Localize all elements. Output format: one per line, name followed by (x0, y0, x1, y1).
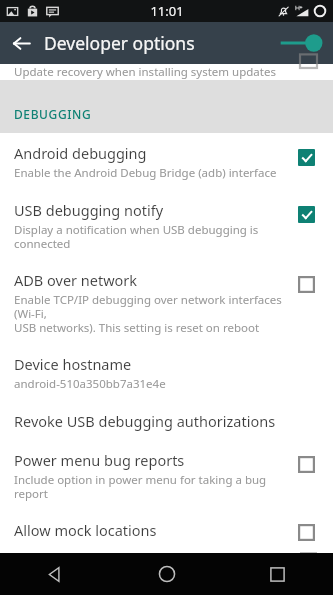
button[interactable]: Device hostname (0, 344, 333, 401)
staticText: Update recovery when installing system u… (14, 64, 276, 80)
staticText: Android debugging (14, 143, 147, 163)
button[interactable]: USB debugging notify (293, 201, 319, 227)
staticText: Enable TCP/IP debugging over network int… (14, 292, 285, 335)
button[interactable]: Navigate up (4, 26, 38, 60)
button[interactable]: Update recovery when installing system u… (0, 64, 333, 80)
button[interactable]: Power menu bug reports (293, 451, 319, 477)
staticText: Enable the Android Debug Bridge (adb) in… (14, 165, 277, 181)
staticText: Allow mock locations (14, 520, 157, 540)
staticText: ADB over network (14, 270, 138, 290)
staticText: Power menu bug reports (14, 450, 185, 470)
staticText: Device hostname (14, 354, 132, 374)
staticText: Include option in power menu for taking … (14, 472, 285, 501)
button[interactable]: Revoke USB debugging authorizations (0, 401, 333, 440)
staticText: Developer options (44, 31, 195, 55)
button[interactable]: Power menu bug reports (0, 440, 333, 510)
staticText: Revoke USB debugging authorizations (14, 411, 276, 431)
staticText: USB debugging notify (14, 200, 164, 220)
button[interactable]: ADB over network (293, 271, 319, 297)
button[interactable]: Home (111, 553, 222, 595)
button[interactable]: Toggle developer options (277, 26, 323, 60)
staticText: 11:01 (150, 2, 184, 20)
button[interactable]: Back (0, 553, 111, 595)
button[interactable]: USB debugging notify (0, 190, 333, 260)
button[interactable]: Allow mock locations (0, 510, 333, 553)
button[interactable]: Android debugging (293, 144, 319, 170)
staticText: Display a notification when USB debuggin… (14, 222, 285, 251)
button[interactable]: ADB over network (0, 260, 333, 344)
button[interactable]: Allow mock locations (293, 521, 319, 544)
staticText: DEBUGGING (14, 106, 92, 122)
button[interactable]: Recent apps (222, 553, 333, 595)
staticText: android-510a350bb7a31e4e (14, 376, 166, 392)
button[interactable]: Android debugging (0, 133, 333, 190)
